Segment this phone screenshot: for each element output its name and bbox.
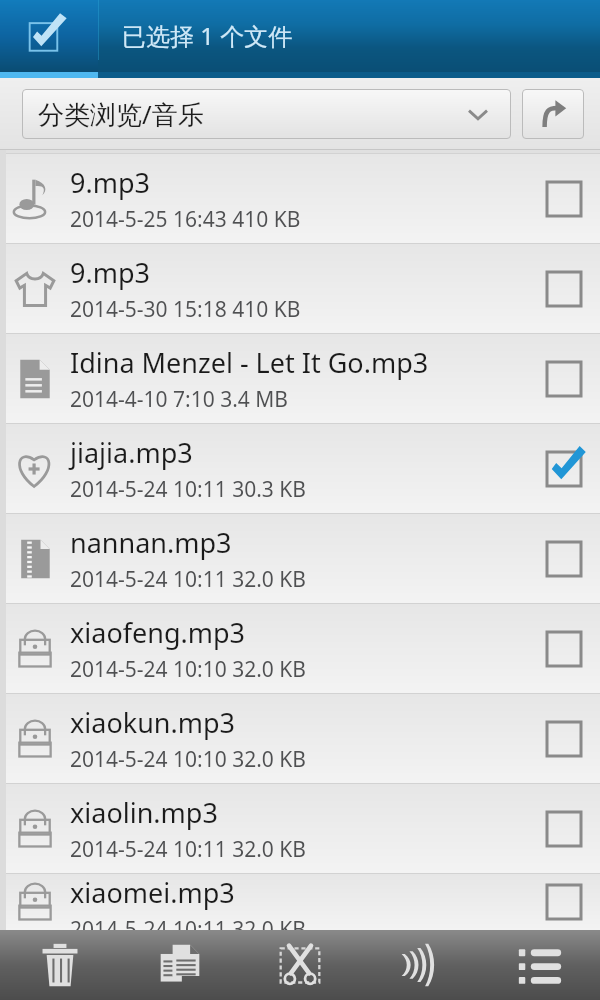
staticText: 9.mp3: [70, 164, 150, 201]
button[interactable]: 9.mp3: [0, 244, 600, 333]
button[interactable]: Copy: [120, 930, 240, 1000]
staticText: 2014-5-24 10:10 32.0 KB: [70, 655, 306, 684]
button[interactable]: Up one level: [522, 89, 584, 139]
button[interactable]: Cut: [240, 930, 360, 1000]
staticText: 2014-5-24 10:10 32.0 KB: [70, 745, 306, 774]
button[interactable]: xiaokun.mp3: [0, 694, 600, 783]
staticText: 2014-5-24 10:11 32.0 KB: [70, 565, 306, 594]
button[interactable]: Idina Menzel - Let It Go.mp3: [0, 334, 600, 423]
staticText: Idina Menzel - Let It Go.mp3: [70, 344, 429, 381]
staticText: xiaokun.mp3: [70, 704, 236, 741]
button[interactable]: 分类浏览/音乐: [22, 89, 511, 139]
staticText: 2014-5-24 10:11 30.3 KB: [70, 475, 306, 504]
staticText: xiaolin.mp3: [70, 794, 218, 831]
staticText: nannan.mp3: [70, 524, 232, 561]
button[interactable]: nannan.mp3: [0, 514, 600, 603]
button[interactable]: 9.mp3: [0, 154, 600, 243]
button[interactable]: xiaolin.mp3: [0, 784, 600, 873]
button[interactable]: xiaomei.mp3: [0, 874, 600, 930]
staticText: 2014-5-24 10:11 32.0 KB: [70, 835, 306, 864]
staticText: 2014-5-24 10:11 32.0 KB: [70, 915, 306, 930]
staticText: 2014-5-25 16:43 410 KB: [70, 205, 301, 234]
staticText: 9.mp3: [70, 254, 150, 291]
button[interactable]: More: [360, 930, 480, 1000]
staticText: xiaofeng.mp3: [70, 614, 246, 651]
button[interactable]: Delete: [0, 930, 120, 1000]
staticText: 分类浏览/音乐: [38, 96, 204, 132]
staticText: 2014-4-10 7:10 3.4 MB: [70, 385, 289, 414]
staticText: 2014-5-30 15:18 410 KB: [70, 295, 301, 324]
staticText: xiaomei.mp3: [70, 874, 235, 911]
button[interactable]: Menu: [480, 930, 600, 1000]
button[interactable]: xiaofeng.mp3: [0, 604, 600, 693]
staticText: jiajia.mp3: [70, 434, 193, 471]
button[interactable]: Select all: [0, 0, 98, 72]
button[interactable]: jiajia.mp3: [0, 424, 600, 513]
staticText: 已选择 1 个文件: [122, 19, 293, 52]
